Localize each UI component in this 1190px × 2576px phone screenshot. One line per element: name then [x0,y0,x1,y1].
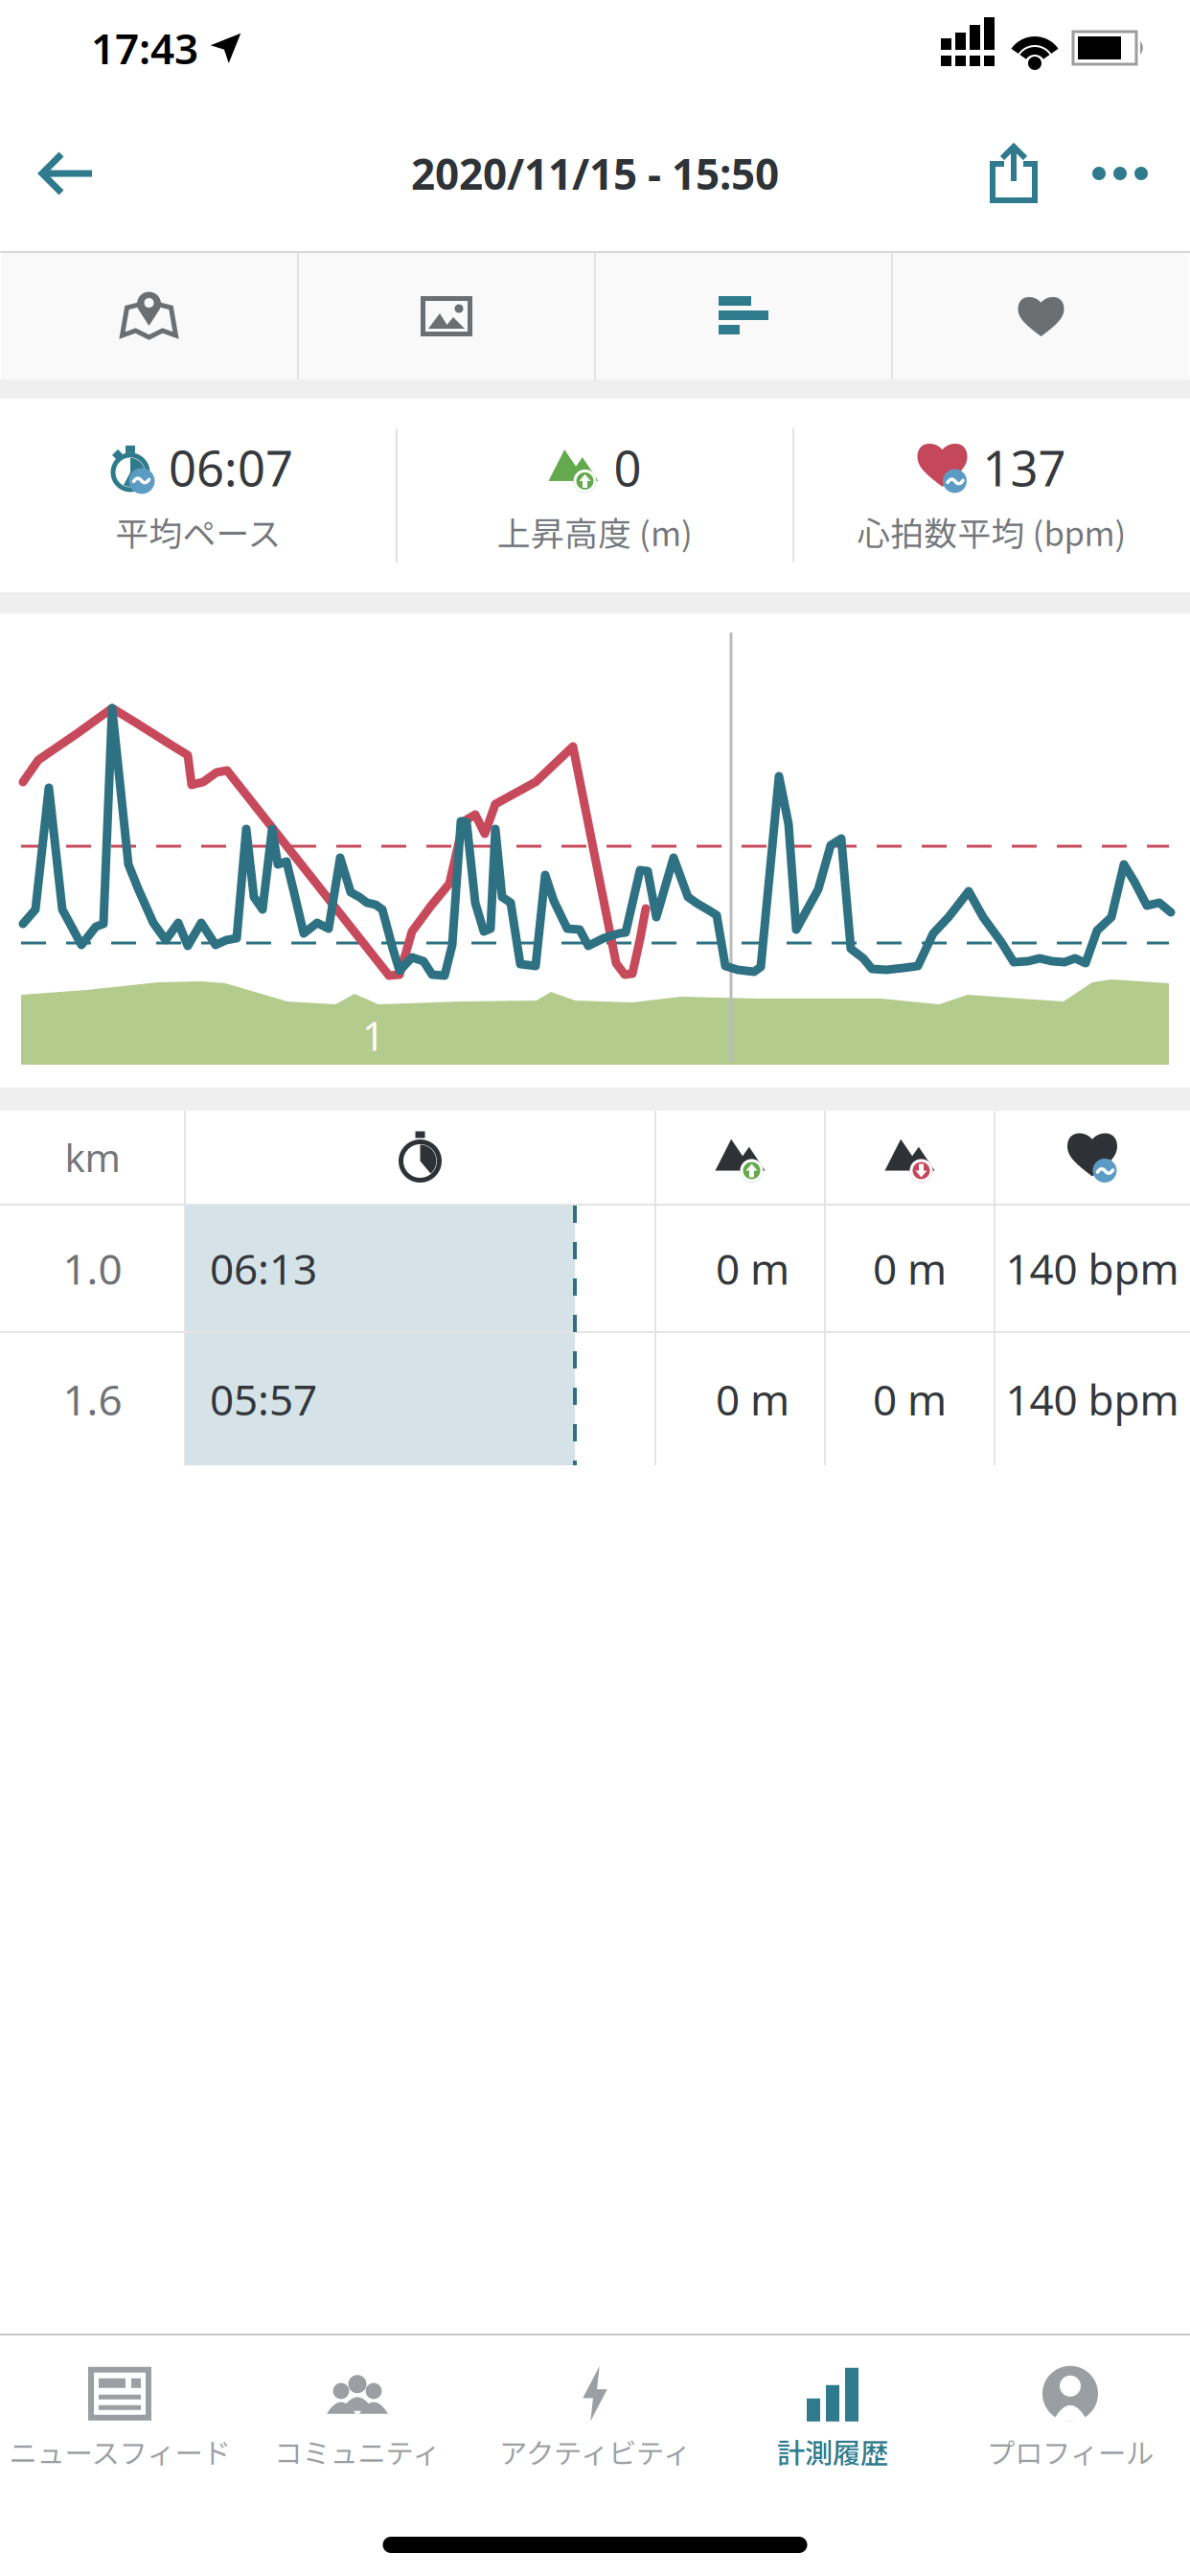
staticText: 140 bpm [1006,1240,1179,1296]
button[interactable]: More [1092,119,1190,228]
staticText: 17:43 [91,20,198,76]
button[interactable]: 計測履歴 [714,2347,951,2491]
staticText: プロフィール [987,2431,1154,2472]
staticText: 0 m [873,1240,947,1296]
staticText: 2020/11/15 - 15:50 [411,145,779,201]
staticText: 1 [362,1009,385,1062]
staticText: 140 bpm [1006,1371,1179,1427]
button[interactable]: Map [1,253,297,379]
staticText: 1.6 [63,1371,122,1427]
staticText: 137 [983,435,1066,500]
staticText: km [65,1132,120,1183]
staticText: 心拍数平均 (bpm) [857,507,1126,556]
staticText: 06:13 [210,1240,317,1296]
staticText: 1.0 [63,1240,122,1296]
button[interactable]: Share [991,114,1085,233]
button[interactable]: Photos [299,253,594,379]
staticText: 05:57 [210,1371,317,1427]
button[interactable]: プロフィール [951,2347,1189,2491]
staticText: アクティビティ [499,2431,691,2472]
staticText: ニュースフィード [9,2431,230,2472]
button[interactable]: アクティビティ [476,2347,714,2491]
staticText: 0 m [716,1240,790,1296]
button[interactable]: Statistics [596,253,891,379]
staticText: 計測履歴 [777,2431,888,2472]
button[interactable]: コミュニティ [239,2347,476,2491]
staticText: コミュニティ [275,2431,440,2472]
staticText: 0 m [873,1371,947,1427]
button[interactable]: Back [0,114,94,233]
button[interactable]: Like [893,253,1189,379]
staticText: 上昇高度 (m) [497,507,693,556]
button[interactable]: ニュースフィード [1,2347,239,2491]
staticText: 平均ペース [115,507,281,556]
staticText: 0 m [716,1371,790,1427]
staticText: 0 [614,435,641,500]
staticText: 06:07 [169,435,293,500]
